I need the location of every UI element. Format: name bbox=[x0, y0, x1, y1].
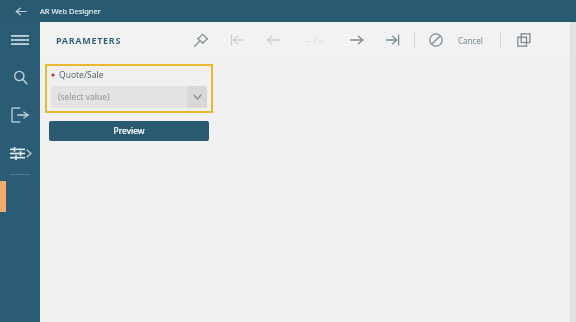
staticText: PARAMETERS bbox=[56, 34, 122, 46]
staticText: -- / -- bbox=[306, 35, 324, 46]
staticText: Cancel bbox=[458, 35, 483, 46]
button[interactable]: Cancel bbox=[455, 31, 486, 50]
button[interactable]: Back bbox=[0, 0, 40, 22]
button[interactable]: Preview bbox=[49, 121, 209, 141]
button[interactable]: Next bbox=[346, 29, 368, 51]
staticText: Quote/Sale bbox=[59, 69, 104, 81]
button[interactable]: Copy bbox=[513, 29, 535, 51]
button[interactable]: Clear bbox=[425, 29, 447, 51]
staticText: AR Web Designer bbox=[40, 6, 101, 16]
staticText: Preview bbox=[49, 125, 209, 137]
button[interactable]: Menu bbox=[0, 22, 40, 58]
button[interactable]: Pin bbox=[190, 29, 212, 51]
button[interactable]: Last bbox=[382, 29, 404, 51]
button[interactable]: (select value) bbox=[51, 86, 207, 108]
button[interactable]: Export bbox=[0, 96, 40, 134]
button[interactable]: Parameters bbox=[0, 134, 40, 172]
button[interactable]: First bbox=[226, 29, 248, 51]
button[interactable]: Search bbox=[0, 58, 40, 96]
button[interactable]: Previous bbox=[262, 29, 284, 51]
staticText: (select value) bbox=[58, 91, 187, 103]
